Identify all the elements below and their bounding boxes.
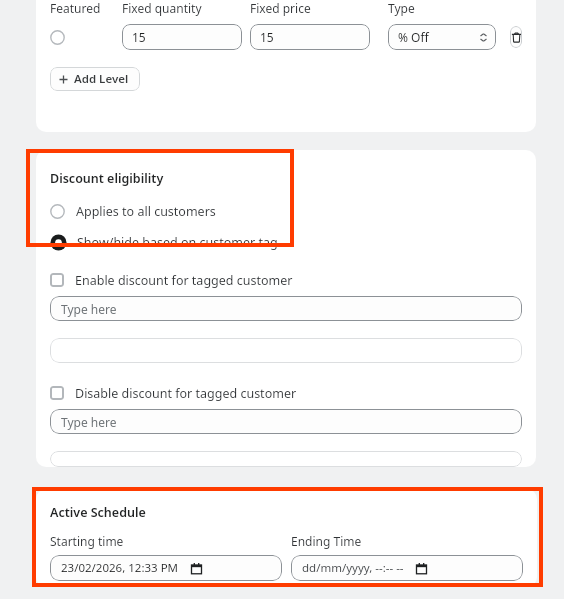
button[interactable]: Add Level <box>50 67 140 91</box>
button[interactable]: Type here <box>50 296 522 321</box>
button[interactable] <box>50 451 522 467</box>
button[interactable]: % Off <box>388 24 496 50</box>
button[interactable]: 23/02/2026, 12:33 PM <box>50 555 282 581</box>
button[interactable]: Delete level <box>510 26 522 48</box>
staticText: Add Level <box>74 71 129 87</box>
staticText: Enable discount for tagged customer <box>75 272 293 289</box>
staticText: Type here <box>61 414 117 430</box>
staticText: Active Schedule <box>50 504 146 521</box>
button[interactable] <box>50 338 522 363</box>
staticText: Show/hide based on customer tag <box>77 234 278 251</box>
staticText: Type here <box>61 301 117 317</box>
button[interactable]: Type here <box>50 409 522 434</box>
staticText: Applies to all customers <box>76 203 216 220</box>
staticText: Discount eligibility <box>50 170 164 187</box>
button[interactable]: Enable discount for tagged customer <box>50 270 293 290</box>
button[interactable]: Disable discount for tagged customer <box>50 383 297 403</box>
staticText: Type <box>388 0 415 16</box>
staticText: % Off <box>398 29 429 45</box>
staticText: Featured <box>50 0 101 16</box>
staticText: 23/02/2026, 12:33 PM <box>61 560 179 576</box>
staticText: 15 <box>260 29 274 45</box>
staticText: Starting time <box>50 533 124 549</box>
staticText: dd/mm/yyyy, --:-- -- <box>302 560 404 576</box>
staticText: 15 <box>132 29 146 45</box>
staticText: Disable discount for tagged customer <box>75 385 297 402</box>
other: Open calendar picker <box>191 563 202 574</box>
staticText: Fixed quantity <box>122 0 202 16</box>
other: Open calendar picker <box>416 563 427 574</box>
button[interactable]: dd/mm/yyyy, --:-- -- <box>291 555 523 581</box>
button[interactable] <box>50 23 108 51</box>
button[interactable]: 15 <box>250 24 370 50</box>
staticText: Ending Time <box>291 533 362 549</box>
button[interactable]: Applies to all customers <box>50 200 216 222</box>
button[interactable]: 15 <box>122 24 242 50</box>
staticText: Fixed price <box>250 0 311 16</box>
button[interactable]: Show/hide based on customer tag <box>50 231 278 253</box>
